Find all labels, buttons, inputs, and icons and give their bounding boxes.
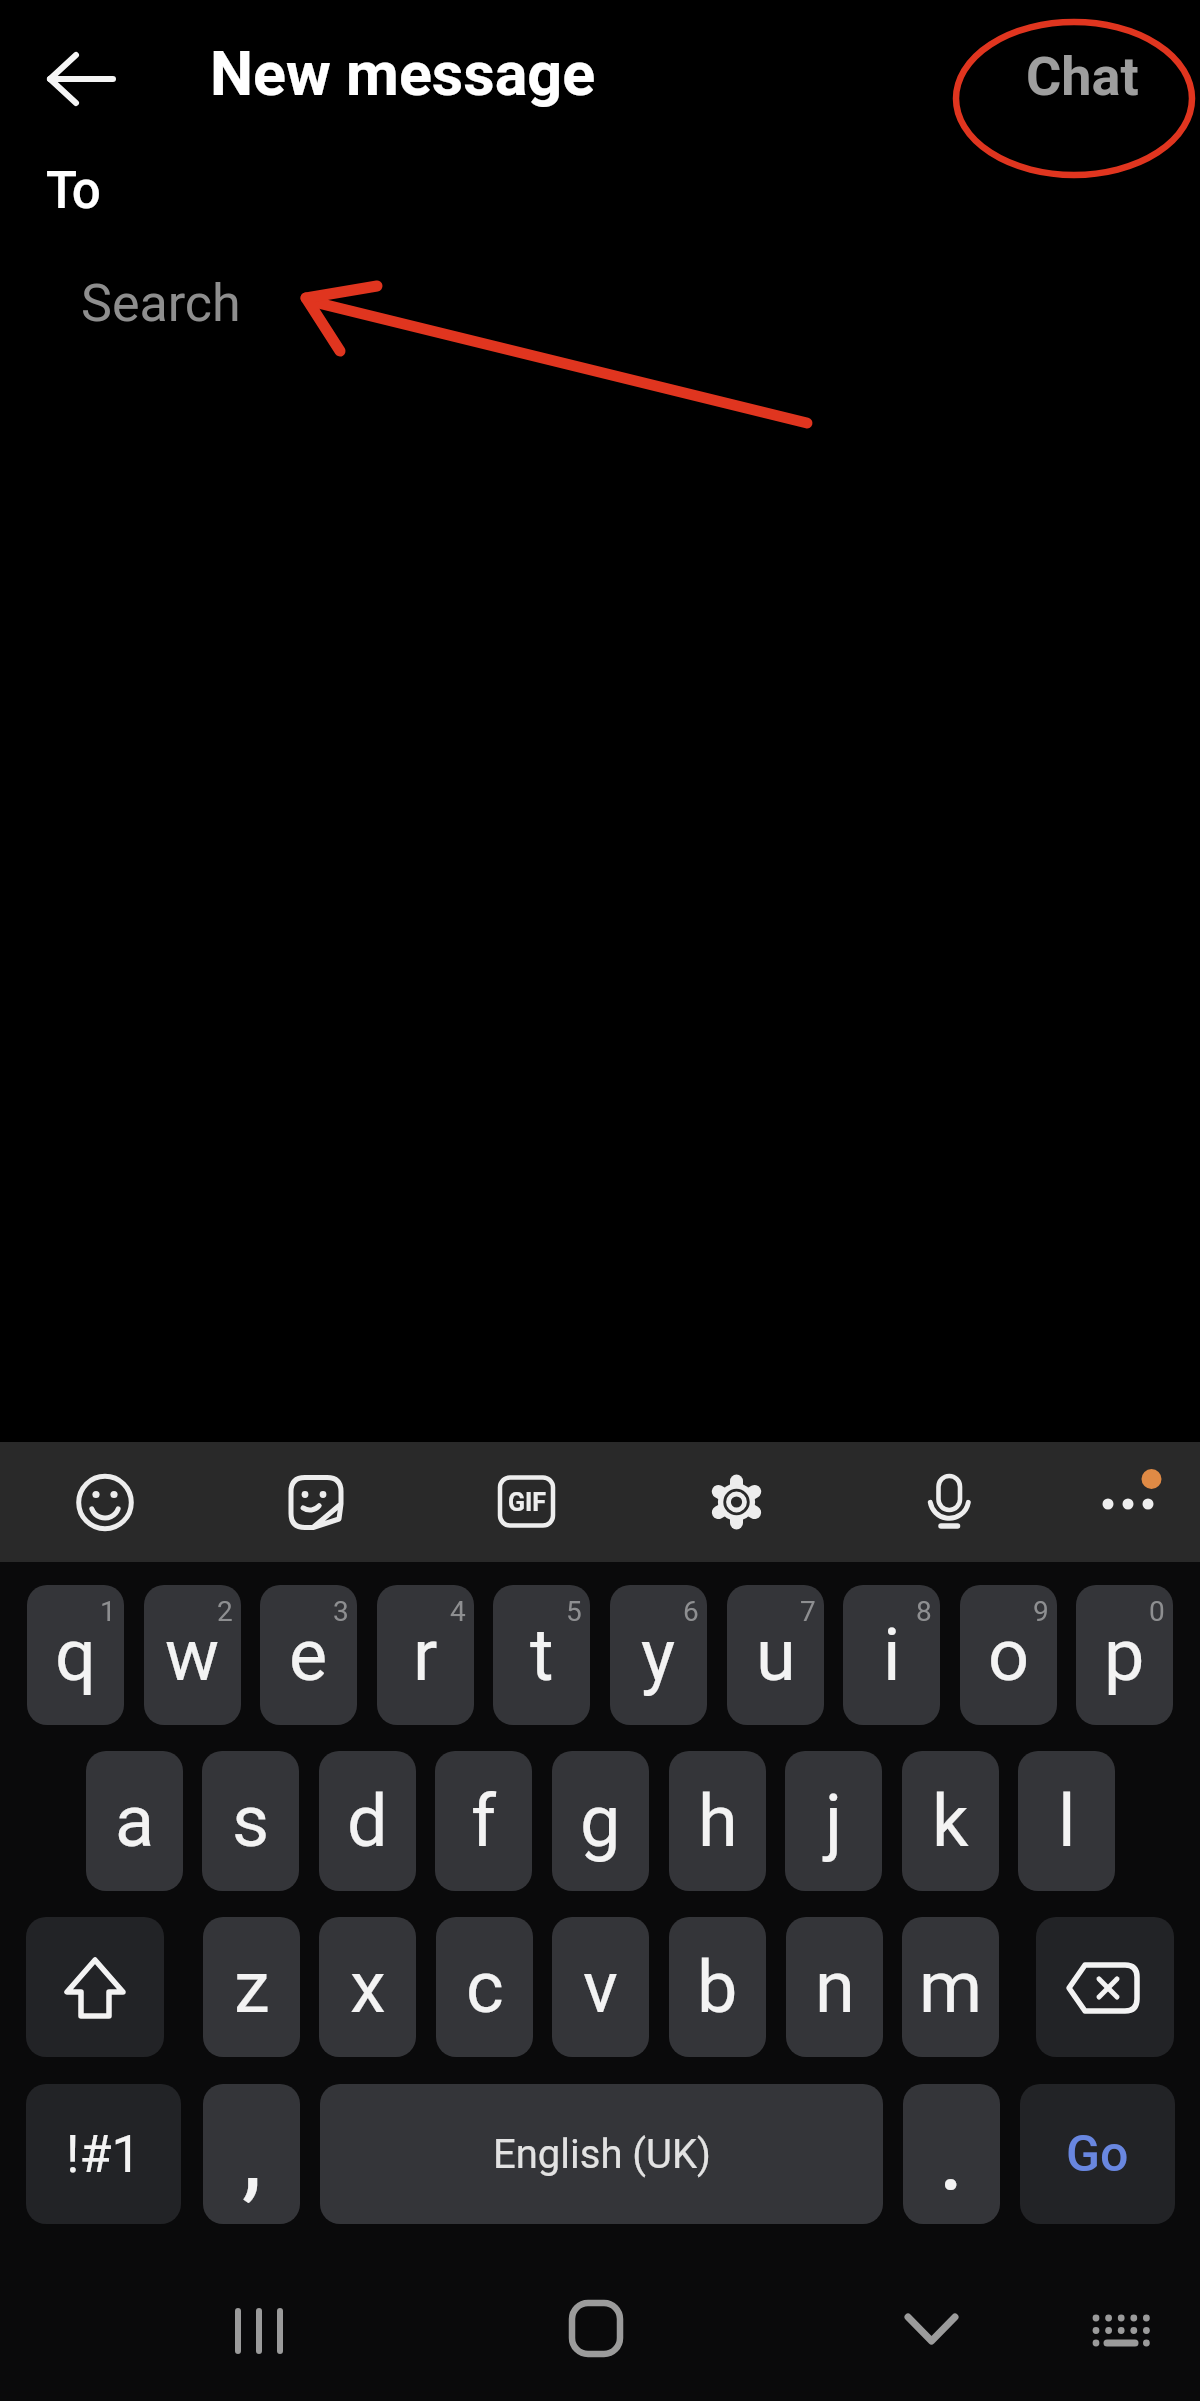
button[interactable]: c [436, 1917, 533, 2057]
staticText: 8 [916, 1595, 932, 1628]
staticText: u [756, 1613, 796, 1697]
button[interactable]: q [27, 1585, 124, 1725]
staticText: h [698, 1779, 738, 1863]
button[interactable]: r [377, 1585, 474, 1725]
button[interactable] [268, 1457, 358, 1547]
staticText: g [580, 1779, 621, 1863]
staticText: c [466, 1945, 504, 2029]
button[interactable] [1036, 1917, 1174, 2057]
button[interactable]: !#1 [26, 2084, 181, 2224]
button[interactable]: , [203, 2084, 300, 2224]
staticText: r [413, 1613, 438, 1697]
button[interactable] [904, 1457, 994, 1547]
button[interactable]: p [1076, 1585, 1173, 1725]
staticText: k [932, 1779, 969, 1863]
staticText: t [530, 1613, 554, 1697]
button[interactable]: x [319, 1917, 416, 2057]
button[interactable] [482, 1457, 572, 1547]
button[interactable]: h [669, 1751, 766, 1891]
staticText: j [825, 1779, 843, 1863]
button[interactable]: f [435, 1751, 532, 1891]
button[interactable] [60, 250, 1140, 350]
staticText: z [234, 1945, 270, 2029]
button[interactable] [1083, 1457, 1173, 1547]
staticText: New message [210, 38, 596, 109]
button[interactable] [691, 1457, 781, 1547]
staticText: a [115, 1779, 155, 1863]
button[interactable]: y [610, 1585, 707, 1725]
staticText: , [242, 2096, 262, 2213]
button[interactable] [876, 2275, 986, 2385]
staticText: m [919, 1945, 983, 2029]
button[interactable]: m [902, 1917, 999, 2057]
button[interactable]: l [1018, 1751, 1115, 1891]
button[interactable] [60, 1457, 150, 1547]
staticText: 3 [333, 1595, 349, 1628]
button[interactable]: a [86, 1751, 183, 1891]
staticText: !#1 [66, 2124, 141, 2185]
staticText: w [165, 1613, 220, 1697]
staticText: b [697, 1945, 738, 2029]
staticText: 9 [1033, 1595, 1049, 1628]
button[interactable]: w [144, 1585, 241, 1725]
button[interactable]: Go [1020, 2084, 1175, 2224]
staticText: x [350, 1945, 386, 2029]
staticText: Search [81, 273, 241, 334]
button[interactable]: . [903, 2084, 1000, 2224]
staticText: 5 [566, 1595, 582, 1628]
staticText: 6 [683, 1595, 699, 1628]
staticText: q [55, 1613, 96, 1697]
button[interactable]: t [493, 1585, 590, 1725]
button[interactable] [26, 1917, 164, 2057]
button[interactable]: j [785, 1751, 882, 1891]
button[interactable]: s [202, 1751, 299, 1891]
button[interactable]: n [786, 1917, 883, 2057]
staticText: GIF [508, 1488, 547, 1517]
button[interactable]: i [843, 1585, 940, 1725]
staticText: Go [1066, 2125, 1129, 2184]
button[interactable]: b [669, 1917, 766, 2057]
staticText: English (UK) [493, 2131, 711, 2178]
button[interactable]: u [727, 1585, 824, 1725]
staticText: v [583, 1945, 618, 2029]
staticText: 4 [450, 1595, 466, 1628]
button[interactable] [204, 2275, 314, 2385]
staticText: i [883, 1613, 901, 1697]
button[interactable]: d [319, 1751, 416, 1891]
button[interactable]: v [552, 1917, 649, 2057]
staticText: 0 [1149, 1595, 1165, 1628]
staticText: f [471, 1779, 497, 1863]
button[interactable]: k [902, 1751, 999, 1891]
staticText: l [1058, 1779, 1076, 1863]
button[interactable] [541, 2275, 651, 2385]
button[interactable] [30, 40, 130, 120]
button[interactable]: Chat [1026, 45, 1139, 108]
staticText: y [641, 1613, 676, 1697]
button[interactable]: e [260, 1585, 357, 1725]
staticText: s [232, 1779, 270, 1863]
staticText: 1 [100, 1595, 116, 1628]
staticText: 2 [217, 1595, 233, 1628]
button[interactable]: g [552, 1751, 649, 1891]
button[interactable] [1065, 2275, 1175, 2385]
staticText: . [938, 2096, 965, 2213]
button[interactable]: o [960, 1585, 1057, 1725]
button[interactable]: z [203, 1917, 300, 2057]
staticText: n [815, 1945, 855, 2029]
staticText: e [289, 1613, 328, 1697]
button[interactable]: English (UK) [320, 2084, 883, 2224]
staticText: To [46, 161, 101, 221]
staticText: o [988, 1613, 1030, 1697]
staticText: p [1104, 1613, 1145, 1697]
staticText: d [347, 1779, 388, 1863]
staticText: 7 [800, 1595, 816, 1628]
